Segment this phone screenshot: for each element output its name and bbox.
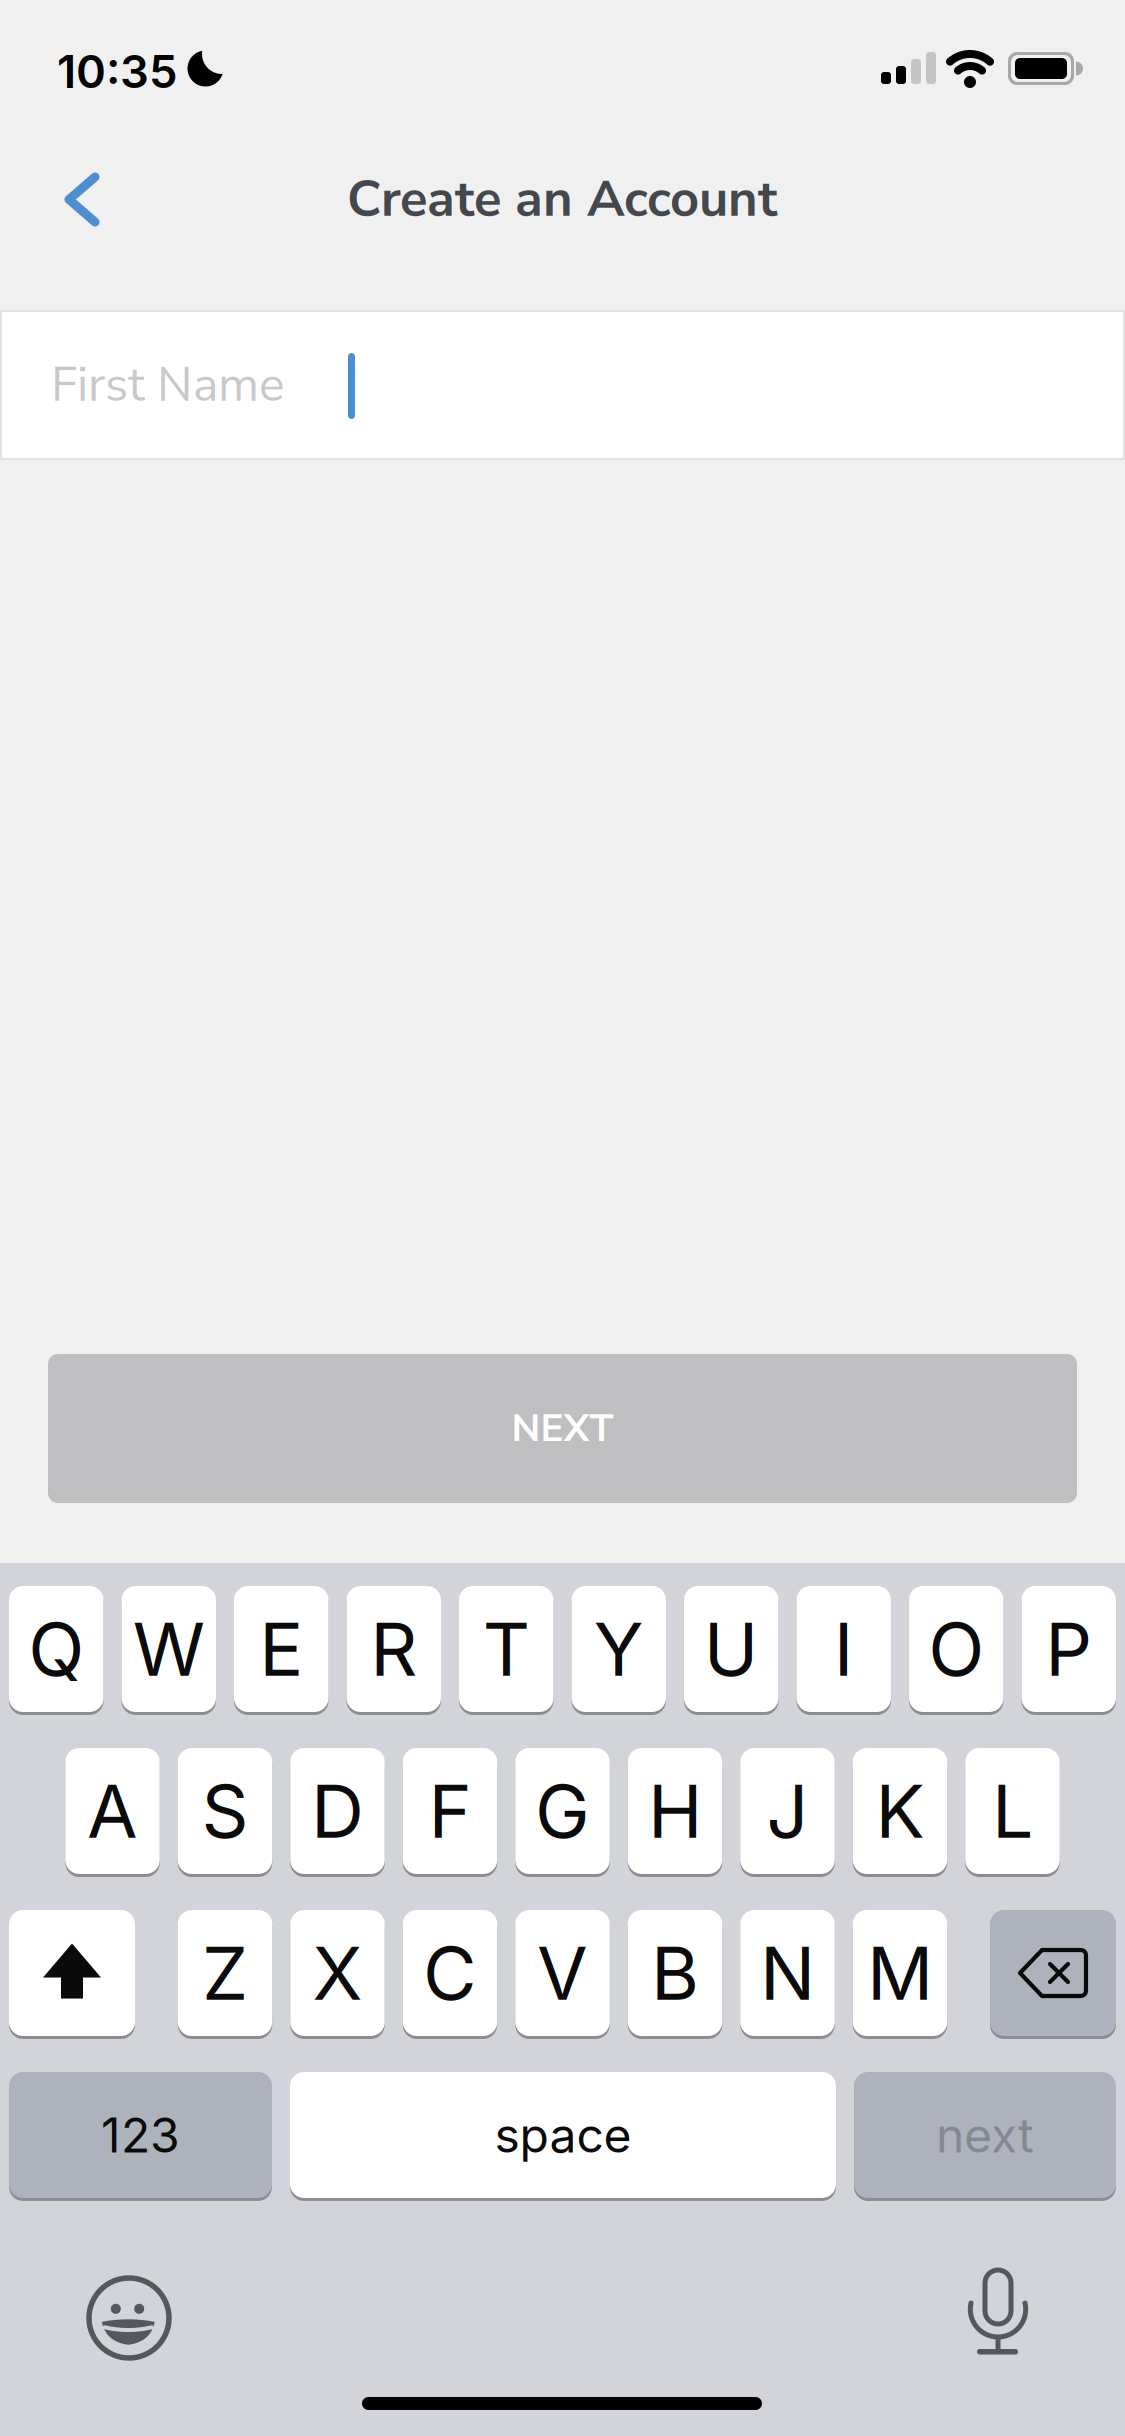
button[interactable]: Back [62,172,102,227]
staticText: G [535,1767,590,1855]
button[interactable]: Y [571,1586,666,1712]
button[interactable]: D [290,1748,385,1874]
staticText: E [259,1605,303,1693]
staticText: I [834,1605,854,1693]
button[interactable]: K [853,1748,947,1874]
staticText: L [992,1767,1033,1855]
staticText: U [704,1605,759,1693]
button[interactable]: Shift [9,1910,135,2036]
button[interactable]: E [234,1586,328,1712]
staticText: V [537,1929,588,2017]
button[interactable]: W [121,1586,216,1712]
button[interactable]: Q [9,1586,103,1712]
staticText: D [311,1767,364,1855]
staticText: NEXT [511,1402,613,1455]
button[interactable]: C [403,1910,497,2036]
staticText: First Name [51,352,285,418]
staticText: P [1045,1605,1092,1693]
button[interactable]: S [178,1748,272,1874]
button[interactable]: O [909,1586,1003,1712]
staticText: Y [594,1605,644,1693]
staticText: N [760,1929,815,2017]
button[interactable]: P [1021,1586,1116,1712]
button[interactable]: L [965,1748,1060,1874]
staticText: C [423,1929,477,2017]
button[interactable]: M [853,1910,947,2036]
button[interactable]: 123 [9,2072,272,2198]
staticText: S [201,1767,248,1855]
button[interactable]: NEXT [48,1354,1077,1503]
staticText: Create an Account [347,164,777,233]
button[interactable]: R [346,1586,441,1712]
staticText: next [936,2106,1034,2164]
staticText: B [651,1929,699,2017]
staticText: 10:35 [57,44,178,99]
button[interactable]: F [403,1748,497,1874]
staticText: F [428,1767,471,1855]
button[interactable]: Dictate [968,2270,1028,2362]
button[interactable]: I [796,1586,891,1712]
staticText: W [133,1605,205,1693]
button[interactable]: space [290,2072,836,2198]
staticText: O [928,1605,984,1693]
staticText: T [483,1605,530,1693]
button[interactable]: J [740,1748,835,1874]
staticText: Z [202,1929,248,2017]
button[interactable]: B [628,1910,722,2036]
button[interactable]: G [515,1748,610,1874]
staticText: space [494,2106,631,2164]
button[interactable]: Emoji [85,2274,169,2358]
button[interactable]: A [65,1748,160,1874]
button[interactable]: T [459,1586,553,1712]
button[interactable]: U [684,1586,778,1712]
staticText: H [648,1767,702,1855]
staticText: K [875,1767,924,1855]
button[interactable]: Delete [990,1910,1116,2036]
button[interactable]: H [628,1748,722,1874]
staticText: Q [28,1605,84,1693]
staticText: X [312,1929,362,2017]
staticText: J [766,1767,808,1855]
button[interactable]: N [740,1910,835,2036]
button[interactable]: next [854,2072,1116,2198]
staticText: R [370,1605,417,1693]
staticText: 123 [101,2106,180,2164]
staticText: A [87,1767,138,1855]
button[interactable]: Z [178,1910,272,2036]
button[interactable]: X [290,1910,385,2036]
staticText: M [867,1929,933,2017]
button[interactable]: V [515,1910,610,2036]
button[interactable]: First Name [0,310,1125,460]
